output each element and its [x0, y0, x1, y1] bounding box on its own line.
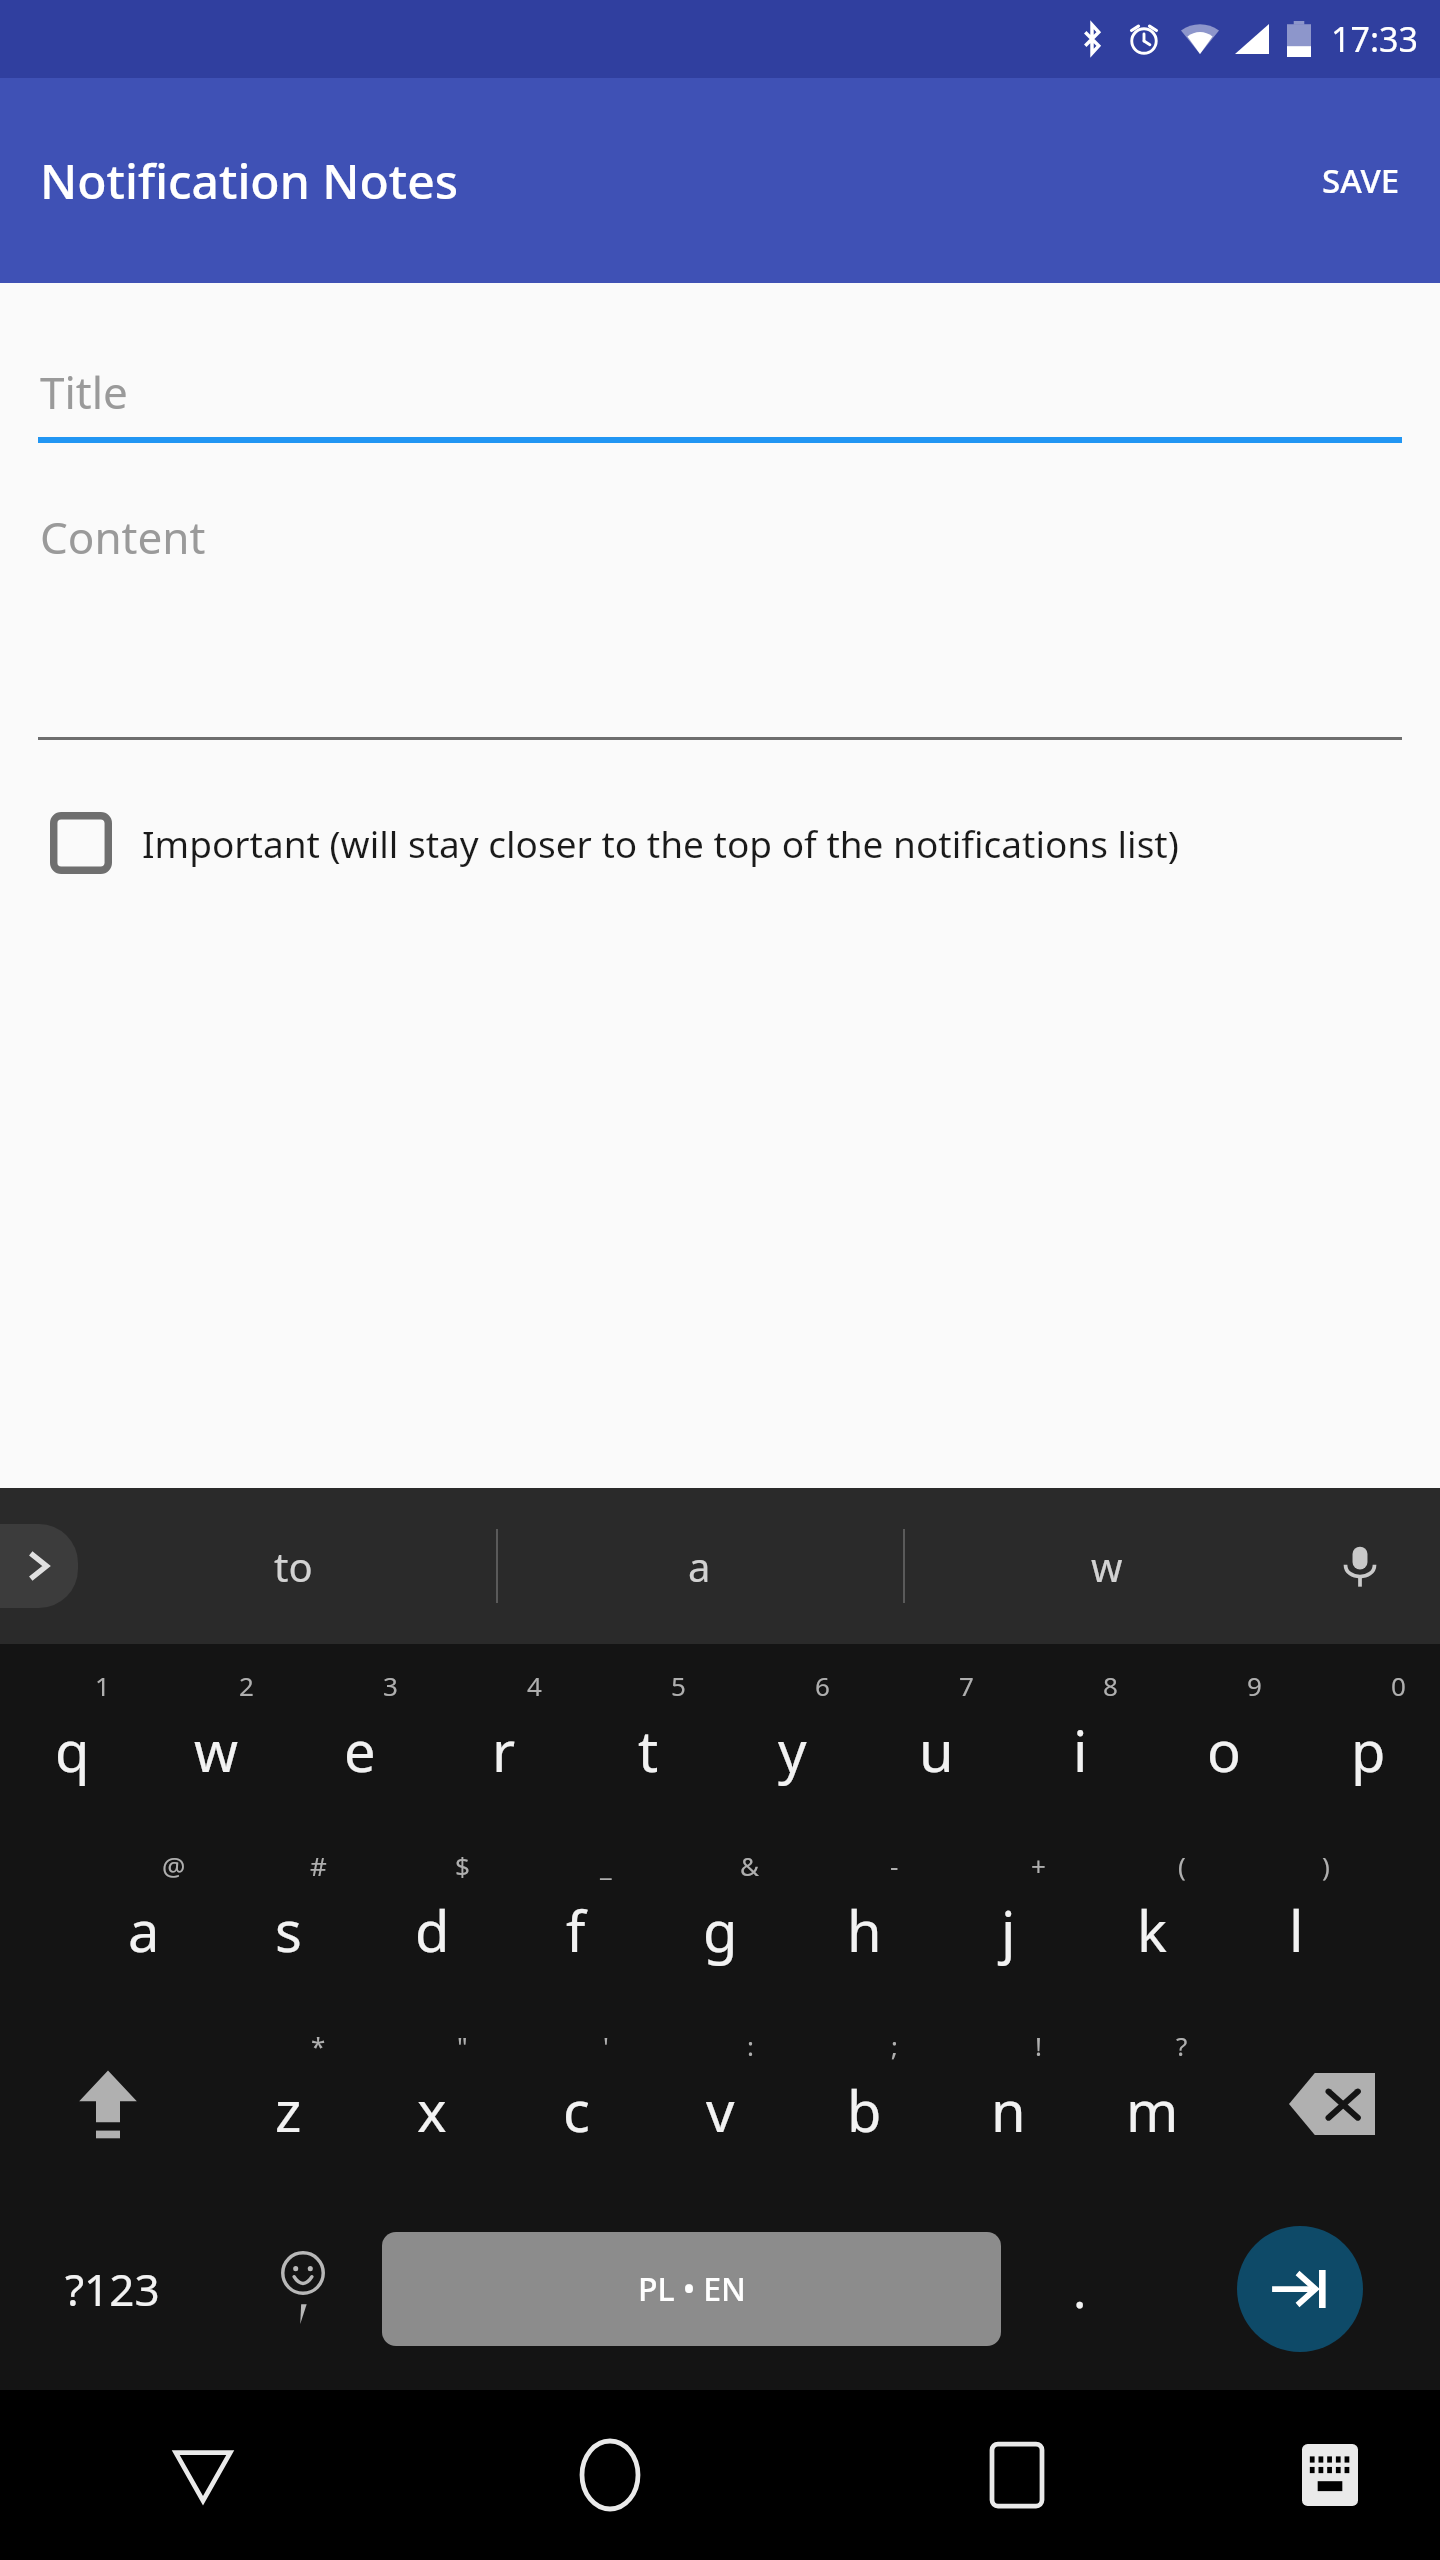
button[interactable]: * [216, 2014, 360, 2194]
staticText: 1 [95, 1668, 110, 1703]
button[interactable]: a [496, 1488, 903, 1644]
staticText: 9 [1247, 1668, 1262, 1703]
staticText: 0 [1391, 1668, 1406, 1703]
button[interactable]: ) [1224, 1834, 1368, 2014]
button[interactable]: 7 [864, 1654, 1008, 1834]
staticText: ) [1322, 1848, 1330, 1883]
staticText: ? [1176, 2028, 1188, 2063]
staticText: p [1351, 1712, 1386, 1788]
button[interactable]: 6 [720, 1654, 864, 1834]
staticText: ! [1035, 2028, 1042, 2063]
button[interactable]: & [648, 1834, 792, 2014]
staticText: s [275, 1892, 302, 1968]
button[interactable]: ?123 [0, 2194, 224, 2384]
staticText: n [991, 2072, 1026, 2148]
button[interactable]: 5 [576, 1654, 720, 1834]
button[interactable]: @ [72, 1834, 216, 2014]
button[interactable]: Content [40, 507, 1400, 737]
staticText: SAVE [1322, 158, 1400, 203]
staticText: 17:33 [1331, 16, 1418, 62]
staticText: r [492, 1712, 516, 1788]
staticText: ' [603, 2028, 609, 2063]
button[interactable]: Expand suggestions [0, 1524, 78, 1608]
button[interactable]: SAVE [1282, 128, 1440, 233]
button[interactable]: - [792, 1834, 936, 2014]
button[interactable]: ; [792, 2014, 936, 2194]
staticText: 3 [383, 1668, 398, 1703]
button[interactable]: 4 [432, 1654, 576, 1834]
button[interactable]: Next field [1237, 2226, 1363, 2352]
button[interactable]: 8 [1008, 1654, 1152, 1834]
staticText: v [706, 2072, 735, 2148]
staticText: + [1031, 1848, 1046, 1883]
staticText: y [778, 1712, 807, 1788]
staticText: q [55, 1712, 90, 1788]
button[interactable]: ! [936, 2014, 1080, 2194]
button[interactable]: 3 [288, 1654, 432, 1834]
button[interactable]: ' [504, 2014, 648, 2194]
staticText: g [703, 1892, 738, 1968]
staticText: & [740, 1848, 760, 1883]
staticText: to [274, 1539, 313, 1593]
staticText: w [194, 1712, 239, 1788]
staticText: 8 [1103, 1668, 1118, 1703]
button[interactable]: Switch keyboard [1220, 2390, 1440, 2560]
staticText: w [1091, 1539, 1123, 1593]
staticText: ; [891, 2028, 898, 2063]
staticText: 7 [959, 1668, 974, 1703]
staticText: _ [600, 1848, 612, 1883]
staticText: h [847, 1892, 882, 1968]
staticText: Title [40, 362, 128, 422]
button[interactable]: ? [1080, 2014, 1224, 2194]
staticText: m [1126, 2072, 1179, 2148]
button[interactable]: Recents [813, 2390, 1220, 2560]
staticText: PL • EN [638, 2267, 746, 2311]
staticText: @ [162, 1848, 186, 1883]
button[interactable]: _ [504, 1834, 648, 2014]
staticText: x [417, 2072, 447, 2148]
staticText: Notification Notes [40, 148, 459, 213]
button[interactable]: Home [406, 2390, 813, 2560]
staticText: 6 [815, 1668, 830, 1703]
button[interactable]: to [90, 1488, 496, 1644]
staticText: k [1137, 1892, 1167, 1968]
staticText: f [566, 1892, 586, 1968]
button[interactable]: Shift [0, 2014, 216, 2194]
staticText: ( [1178, 1848, 1186, 1883]
staticText: b [847, 2072, 882, 2148]
staticText: e [344, 1712, 376, 1788]
button[interactable]: PL • EN [382, 2232, 1001, 2346]
staticText: . [1073, 2255, 1087, 2323]
staticText: t [638, 1712, 659, 1788]
button[interactable]: 2 [144, 1654, 288, 1834]
button[interactable]: 0 [1296, 1654, 1440, 1834]
button[interactable]: . [1001, 2194, 1159, 2384]
staticText: l [1289, 1892, 1304, 1968]
button[interactable]: Voice input [1320, 1526, 1400, 1606]
button[interactable]: + [936, 1834, 1080, 2014]
button[interactable]: Hide keyboard [0, 2390, 406, 2560]
staticText: z [275, 2072, 302, 2148]
staticText: 2 [239, 1668, 254, 1703]
button[interactable]: " [360, 2014, 504, 2194]
button[interactable]: Backspace [1224, 2014, 1440, 2194]
staticText: * [311, 2028, 326, 2063]
button[interactable]: Emoji [224, 2194, 382, 2384]
button[interactable]: w [903, 1488, 1310, 1644]
button[interactable]: 1 [0, 1654, 144, 1834]
staticText: $ [455, 1848, 470, 1883]
button[interactable]: : [648, 2014, 792, 2194]
staticText: a [688, 1539, 711, 1593]
staticText: c [563, 2072, 590, 2148]
staticText: o [1207, 1712, 1241, 1788]
button[interactable]: Important (will stay closer to the top o… [0, 798, 1440, 888]
button[interactable]: # [216, 1834, 360, 2014]
button[interactable]: 9 [1152, 1654, 1296, 1834]
staticText: j [1001, 1892, 1016, 1968]
staticText: # [310, 1848, 327, 1883]
staticText: 5 [671, 1668, 686, 1703]
button[interactable]: Title [40, 347, 1400, 437]
button[interactable]: ( [1080, 1834, 1224, 2014]
button[interactable]: $ [360, 1834, 504, 2014]
staticText: i [1073, 1712, 1088, 1788]
